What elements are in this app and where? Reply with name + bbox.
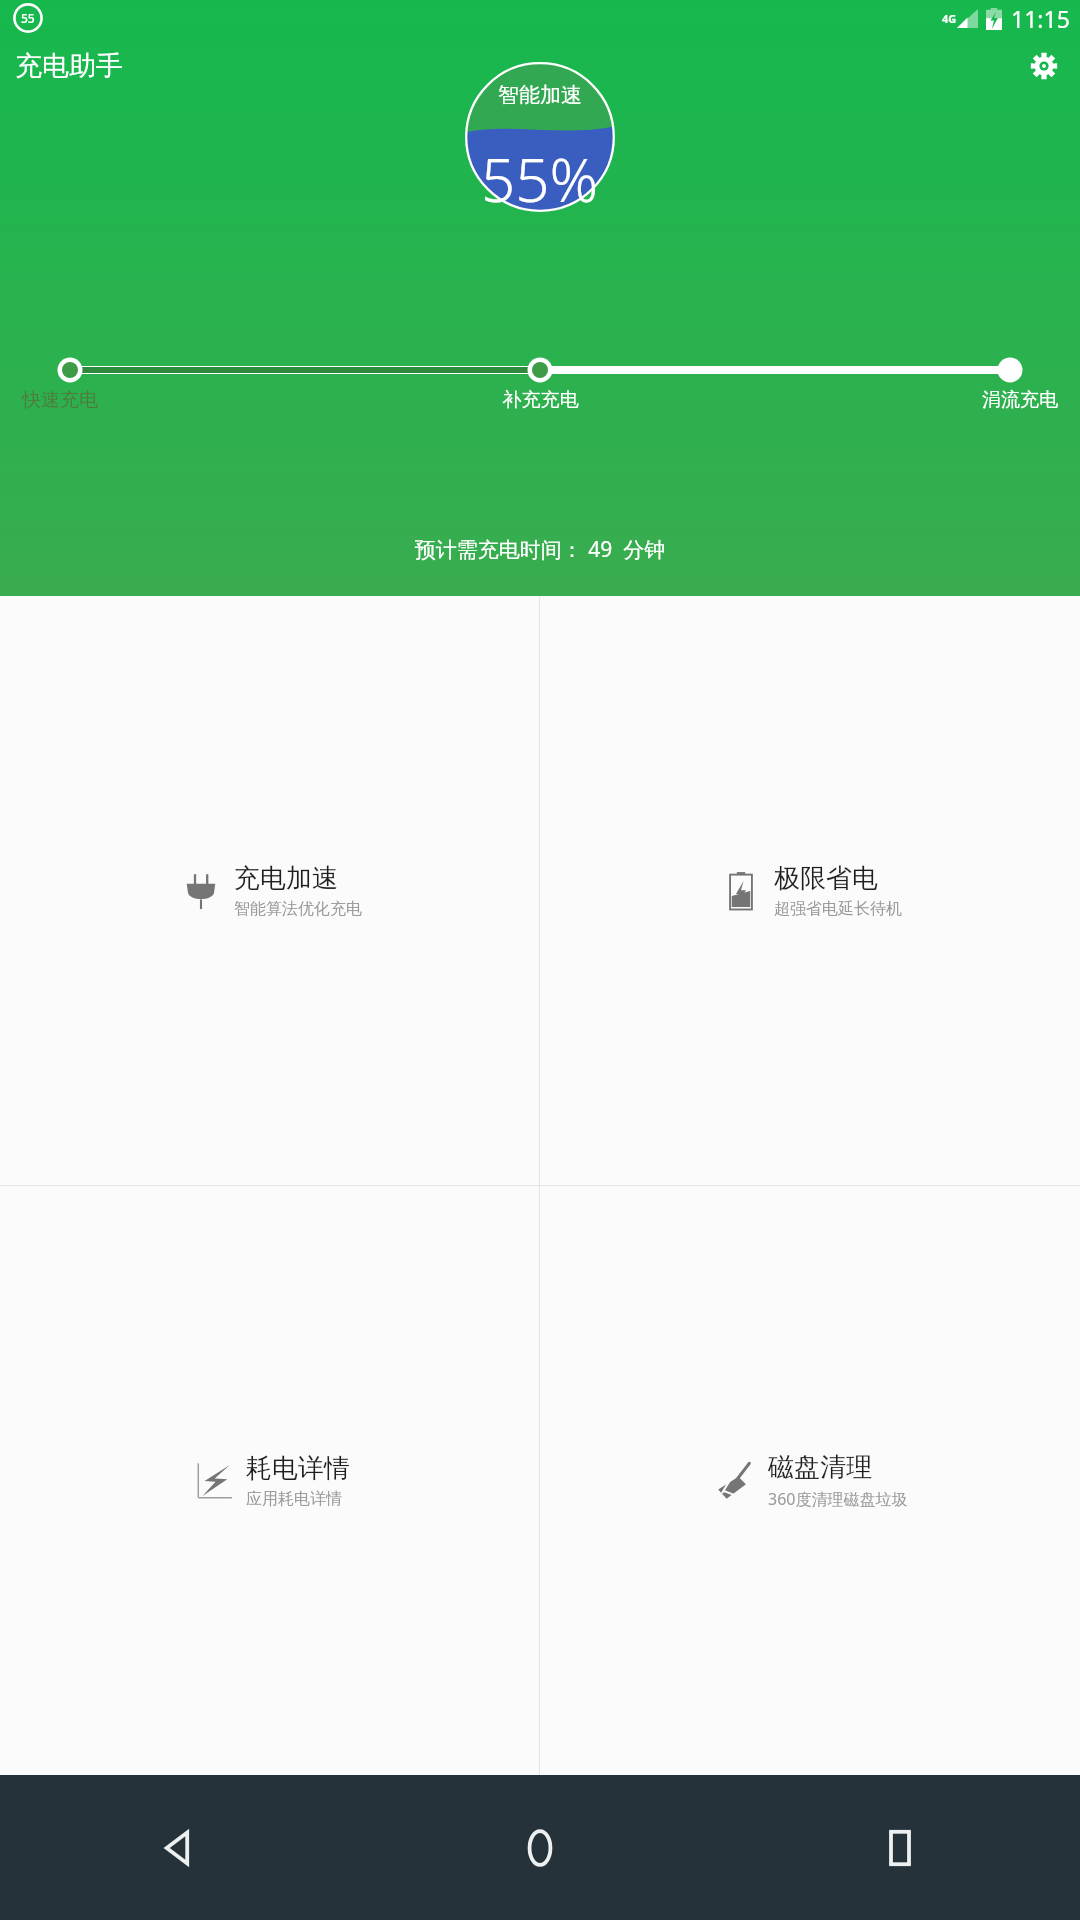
button[interactable]: Home (360, 1775, 720, 1920)
staticText: 充电加速 (234, 862, 338, 895)
staticText: 应用耗电详情 (246, 1489, 342, 1509)
button[interactable]: 充电加速 (0, 596, 539, 1185)
staticText: 超强省电延长待机 (774, 899, 902, 919)
staticText: 快速充电 (22, 388, 368, 412)
staticText: 补充充电 (368, 388, 713, 412)
button[interactable]: Recents (720, 1775, 1080, 1920)
staticText: 智能算法优化充电 (234, 899, 362, 919)
staticText: 智能加速 (498, 82, 582, 108)
button[interactable]: 耗电详情 (0, 1186, 539, 1775)
staticText: 涓流充电 (713, 388, 1058, 412)
staticText: 极限省电 (774, 862, 878, 895)
staticText: 55% (481, 138, 599, 220)
staticText: 磁盘清理 (768, 1451, 872, 1484)
staticText: 4G (942, 11, 957, 26)
button[interactable]: 极限省电 (540, 596, 1080, 1185)
staticText: 耗电详情 (246, 1452, 350, 1485)
button[interactable]: 磁盘清理 (540, 1186, 1080, 1775)
staticText: 11:15 (1011, 3, 1070, 34)
staticText: 360度清理磁盘垃圾 (768, 1488, 908, 1510)
staticText: 充电助手 (15, 49, 123, 83)
staticText: 55 (21, 10, 35, 26)
staticText: 预计需充电时间： 49 分钟 (0, 535, 1080, 564)
button[interactable]: Back (0, 1775, 360, 1920)
button[interactable]: Settings (1019, 41, 1069, 91)
